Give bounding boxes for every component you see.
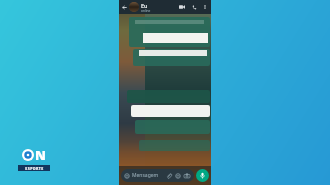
button[interactable]: Video call (177, 2, 187, 12)
button[interactable]: Mensagem (121, 169, 194, 182)
staticText: online (141, 9, 151, 13)
staticText: Eu (141, 2, 148, 9)
button[interactable]: Profile photo (129, 2, 139, 12)
staticText: ESPORTE (25, 166, 44, 171)
staticText: N (35, 146, 46, 164)
button[interactable]: Voice message (196, 169, 209, 182)
staticText: Mensagem (132, 172, 165, 179)
button[interactable]: More options (200, 2, 210, 12)
button[interactable]: Attach (165, 172, 173, 180)
button[interactable]: Back (121, 4, 128, 11)
button[interactable]: Stickers (174, 172, 182, 180)
button[interactable]: Camera (183, 172, 191, 180)
button[interactable]: Voice call (189, 2, 199, 12)
button[interactable]: Eu (141, 2, 177, 13)
